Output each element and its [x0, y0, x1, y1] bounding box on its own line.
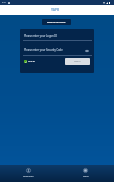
button[interactable]: Save ID [24, 60, 36, 63]
button[interactable]: Fingerprint [0, 165, 57, 182]
staticText: Save ID [28, 60, 36, 63]
staticText: Please enter your Security Code [24, 48, 63, 52]
button[interactable]: LOG IN [65, 58, 90, 65]
button[interactable]: Show security code [83, 47, 91, 55]
staticText: Demo [83, 175, 89, 178]
staticText: 9:41 [2, 1, 6, 4]
button[interactable]: INSTANT BALANCE [42, 19, 71, 25]
staticText: Please enter your Logon ID [24, 34, 58, 38]
staticText: INSTANT BALANCE [47, 21, 66, 24]
staticText: LOG IN [74, 60, 81, 63]
button[interactable]: Demo [57, 165, 114, 182]
staticText: Fingerprint [23, 175, 34, 178]
staticText: YAPR [51, 8, 60, 12]
